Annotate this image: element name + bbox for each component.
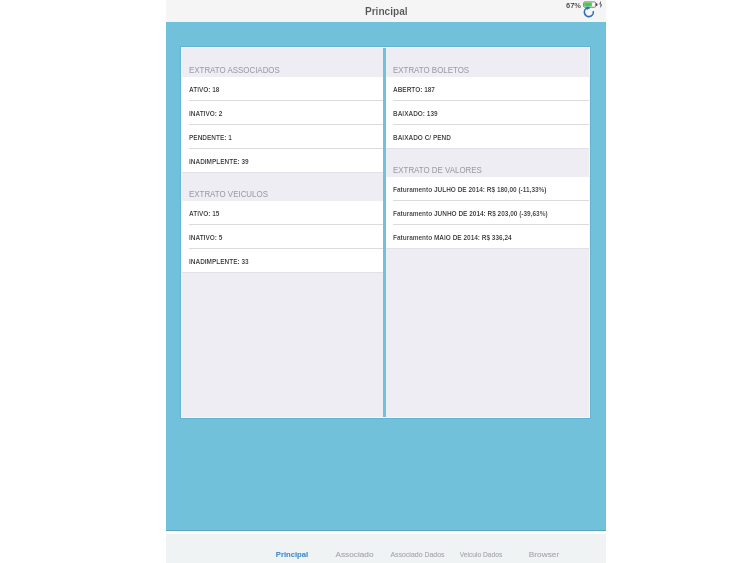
button[interactable]: PENDENTE: 1 (182, 125, 383, 149)
button[interactable]: Veiculo Dados (449, 534, 512, 563)
button[interactable]: INATIVO: 2 (182, 101, 383, 125)
staticText: EXTRATO ASSOCIADOS (189, 65, 280, 75)
button[interactable]: BAIXADO: 139 (386, 101, 589, 125)
button[interactable]: Associado Dados (386, 534, 449, 563)
staticText: INATIVO: 2 (189, 109, 223, 117)
staticText: Associado Dados (390, 550, 445, 559)
staticText: Browser (528, 550, 560, 559)
button[interactable]: Associado (323, 534, 386, 563)
button[interactable]: ABERTO: 187 (386, 77, 589, 101)
button[interactable]: Principal (260, 534, 323, 563)
button[interactable]: ATIVO: 15 (182, 201, 383, 225)
staticText: Associado (335, 550, 373, 559)
staticText: Faturamento JUNHO DE 2014: R$ 203,00 (-3… (393, 209, 548, 217)
staticText: BAIXADO C/ PEND (393, 133, 451, 141)
staticText: Principal (365, 5, 408, 17)
button[interactable]: Faturamento JUNHO DE 2014: R$ 203,00 (-3… (386, 201, 589, 225)
staticText: ATIVO: 15 (189, 209, 220, 217)
button[interactable]: ATIVO: 18 (182, 77, 383, 101)
staticText: Veiculo Dados (459, 550, 503, 559)
staticText: Principal (276, 550, 308, 559)
staticText: Faturamento MAIO DE 2014: R$ 336,24 (393, 233, 512, 241)
staticText: INATIVO: 5 (189, 233, 223, 241)
staticText: ABERTO: 187 (393, 85, 435, 93)
staticText: Faturamento JULHO DE 2014: R$ 180,00 (-1… (393, 185, 547, 193)
button[interactable]: BAIXADO C/ PEND (386, 125, 589, 149)
other: Battery 67 percent charging, syncing (581, 0, 606, 22)
button[interactable]: INADIMPLENTE: 33 (182, 249, 383, 273)
button[interactable]: INADIMPLENTE: 39 (182, 149, 383, 173)
button[interactable]: Browser (512, 534, 575, 563)
staticText: EXTRATO DE VALORES (393, 165, 483, 175)
button[interactable]: Faturamento JULHO DE 2014: R$ 180,00 (-1… (386, 177, 589, 201)
staticText: 67% (566, 1, 582, 9)
staticText: INADIMPLENTE: 33 (189, 257, 249, 265)
staticText: EXTRATO BOLETOS (393, 65, 470, 75)
staticText: EXTRATO VEICULOS (189, 189, 268, 199)
button[interactable]: INATIVO: 5 (182, 225, 383, 249)
staticText: ATIVO: 18 (189, 85, 220, 93)
staticText: PENDENTE: 1 (189, 133, 232, 141)
staticText: INADIMPLENTE: 39 (189, 157, 249, 165)
staticText: BAIXADO: 139 (393, 109, 438, 117)
button[interactable]: Faturamento MAIO DE 2014: R$ 336,24 (386, 225, 589, 249)
